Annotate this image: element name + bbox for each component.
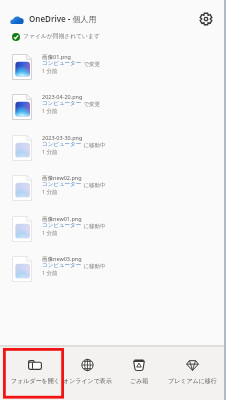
staticText: コンピューター xyxy=(42,262,82,269)
staticText: 1 分前 xyxy=(42,107,58,115)
staticText: フォルダーを開く xyxy=(11,377,60,385)
button[interactable]: 画像new03.png xyxy=(0,253,226,294)
staticText: 1 分前 xyxy=(42,229,58,237)
staticText: 2023-04-20.png xyxy=(42,93,83,100)
staticText: ごみ箱 xyxy=(130,377,149,385)
staticText: 1 分前 xyxy=(42,67,58,75)
staticText: 2023-03-30.png xyxy=(42,134,83,141)
button[interactable]: 画像new01.png xyxy=(0,213,226,254)
staticText: 1 分前 xyxy=(42,269,58,277)
button[interactable]: 画像01.png xyxy=(0,51,226,92)
staticText: に移動中 xyxy=(82,262,106,270)
button[interactable]: ごみ箱 xyxy=(113,350,165,397)
staticText: コンピューター xyxy=(42,100,82,107)
staticText: OneDrive - 個人用 xyxy=(29,13,97,24)
staticText: 画像new03.png xyxy=(42,255,82,263)
staticText: で変更 xyxy=(82,100,101,108)
staticText: 画像new01.png xyxy=(42,215,82,223)
staticText: 1 分前 xyxy=(42,148,58,156)
staticText: に移動中 xyxy=(82,222,106,230)
staticText: ファイルが同期されています xyxy=(23,32,100,39)
staticText: に移動中 xyxy=(82,141,106,149)
staticText: オンラインで表示 xyxy=(63,377,112,385)
button[interactable]: 2023-03-30.png xyxy=(0,132,226,173)
staticText: 画像01.png xyxy=(42,53,71,61)
staticText: 1 分前 xyxy=(42,188,58,196)
button[interactable]: 2023-04-20.png xyxy=(0,91,226,132)
button[interactable]: Settings xyxy=(199,12,213,26)
staticText: プレミアムに移行 xyxy=(168,377,217,385)
staticText: 画像new02.png xyxy=(42,174,82,182)
staticText: コンピューター xyxy=(42,181,82,188)
staticText: で変更 xyxy=(82,60,101,68)
button[interactable]: プレミアムに移行 xyxy=(166,350,218,397)
button[interactable]: フォルダーを開く xyxy=(9,350,61,397)
staticText: コンピューター xyxy=(42,222,82,229)
staticText: コンピューター xyxy=(42,141,82,148)
button[interactable]: オンラインで表示 xyxy=(61,350,113,397)
staticText: に移動中 xyxy=(82,181,106,189)
button[interactable]: 画像new02.png xyxy=(0,172,226,213)
staticText: コンピューター xyxy=(42,60,82,67)
